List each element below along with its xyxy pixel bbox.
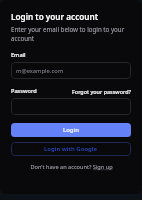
staticText: Login	[63, 126, 79, 134]
staticText: Password	[11, 87, 37, 95]
button[interactable]	[11, 98, 131, 115]
staticText: Don't have an account? Sign up	[30, 163, 113, 171]
button[interactable]: Forgot your password?	[72, 88, 131, 95]
staticText: Login to your account	[11, 11, 99, 22]
button[interactable]: m@example.com	[11, 62, 131, 79]
staticText: Login with Google	[44, 145, 98, 153]
staticText: Email	[11, 51, 26, 59]
button[interactable]: Login	[11, 123, 131, 137]
staticText: Forgot your password?	[72, 88, 131, 95]
staticText: m@example.com	[16, 67, 64, 75]
staticText: Enter your email below to login to your …	[11, 25, 131, 43]
button[interactable]: Login with Google	[11, 142, 131, 156]
